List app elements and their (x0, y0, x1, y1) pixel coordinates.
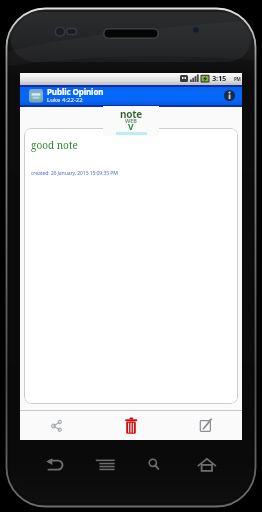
staticText: V (128, 121, 134, 133)
staticText: note (120, 107, 142, 121)
staticText: 3:15 (212, 73, 226, 83)
button[interactable] (94, 453, 118, 477)
staticText: Public Opinion (47, 86, 104, 97)
staticText: PM (234, 76, 241, 82)
button[interactable] (46, 416, 66, 436)
staticText: good note (31, 138, 78, 152)
staticText: WEB (125, 117, 137, 124)
staticText: created: 26 January, 2015 15:09:35 PM (31, 169, 118, 176)
button[interactable] (121, 415, 143, 437)
button[interactable] (42, 453, 66, 477)
button[interactable] (196, 415, 218, 437)
button[interactable] (142, 453, 166, 477)
staticText: Luke 4:22-22 (47, 96, 83, 104)
button[interactable] (195, 454, 219, 478)
button[interactable] (222, 88, 237, 103)
